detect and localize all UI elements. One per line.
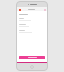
button[interactable] (19, 30, 45, 33)
button[interactable] (19, 56, 45, 59)
button[interactable] (19, 24, 45, 27)
button[interactable]: Account (43, 8, 46, 11)
button[interactable] (19, 18, 45, 21)
button[interactable]: Menu (18, 8, 21, 11)
